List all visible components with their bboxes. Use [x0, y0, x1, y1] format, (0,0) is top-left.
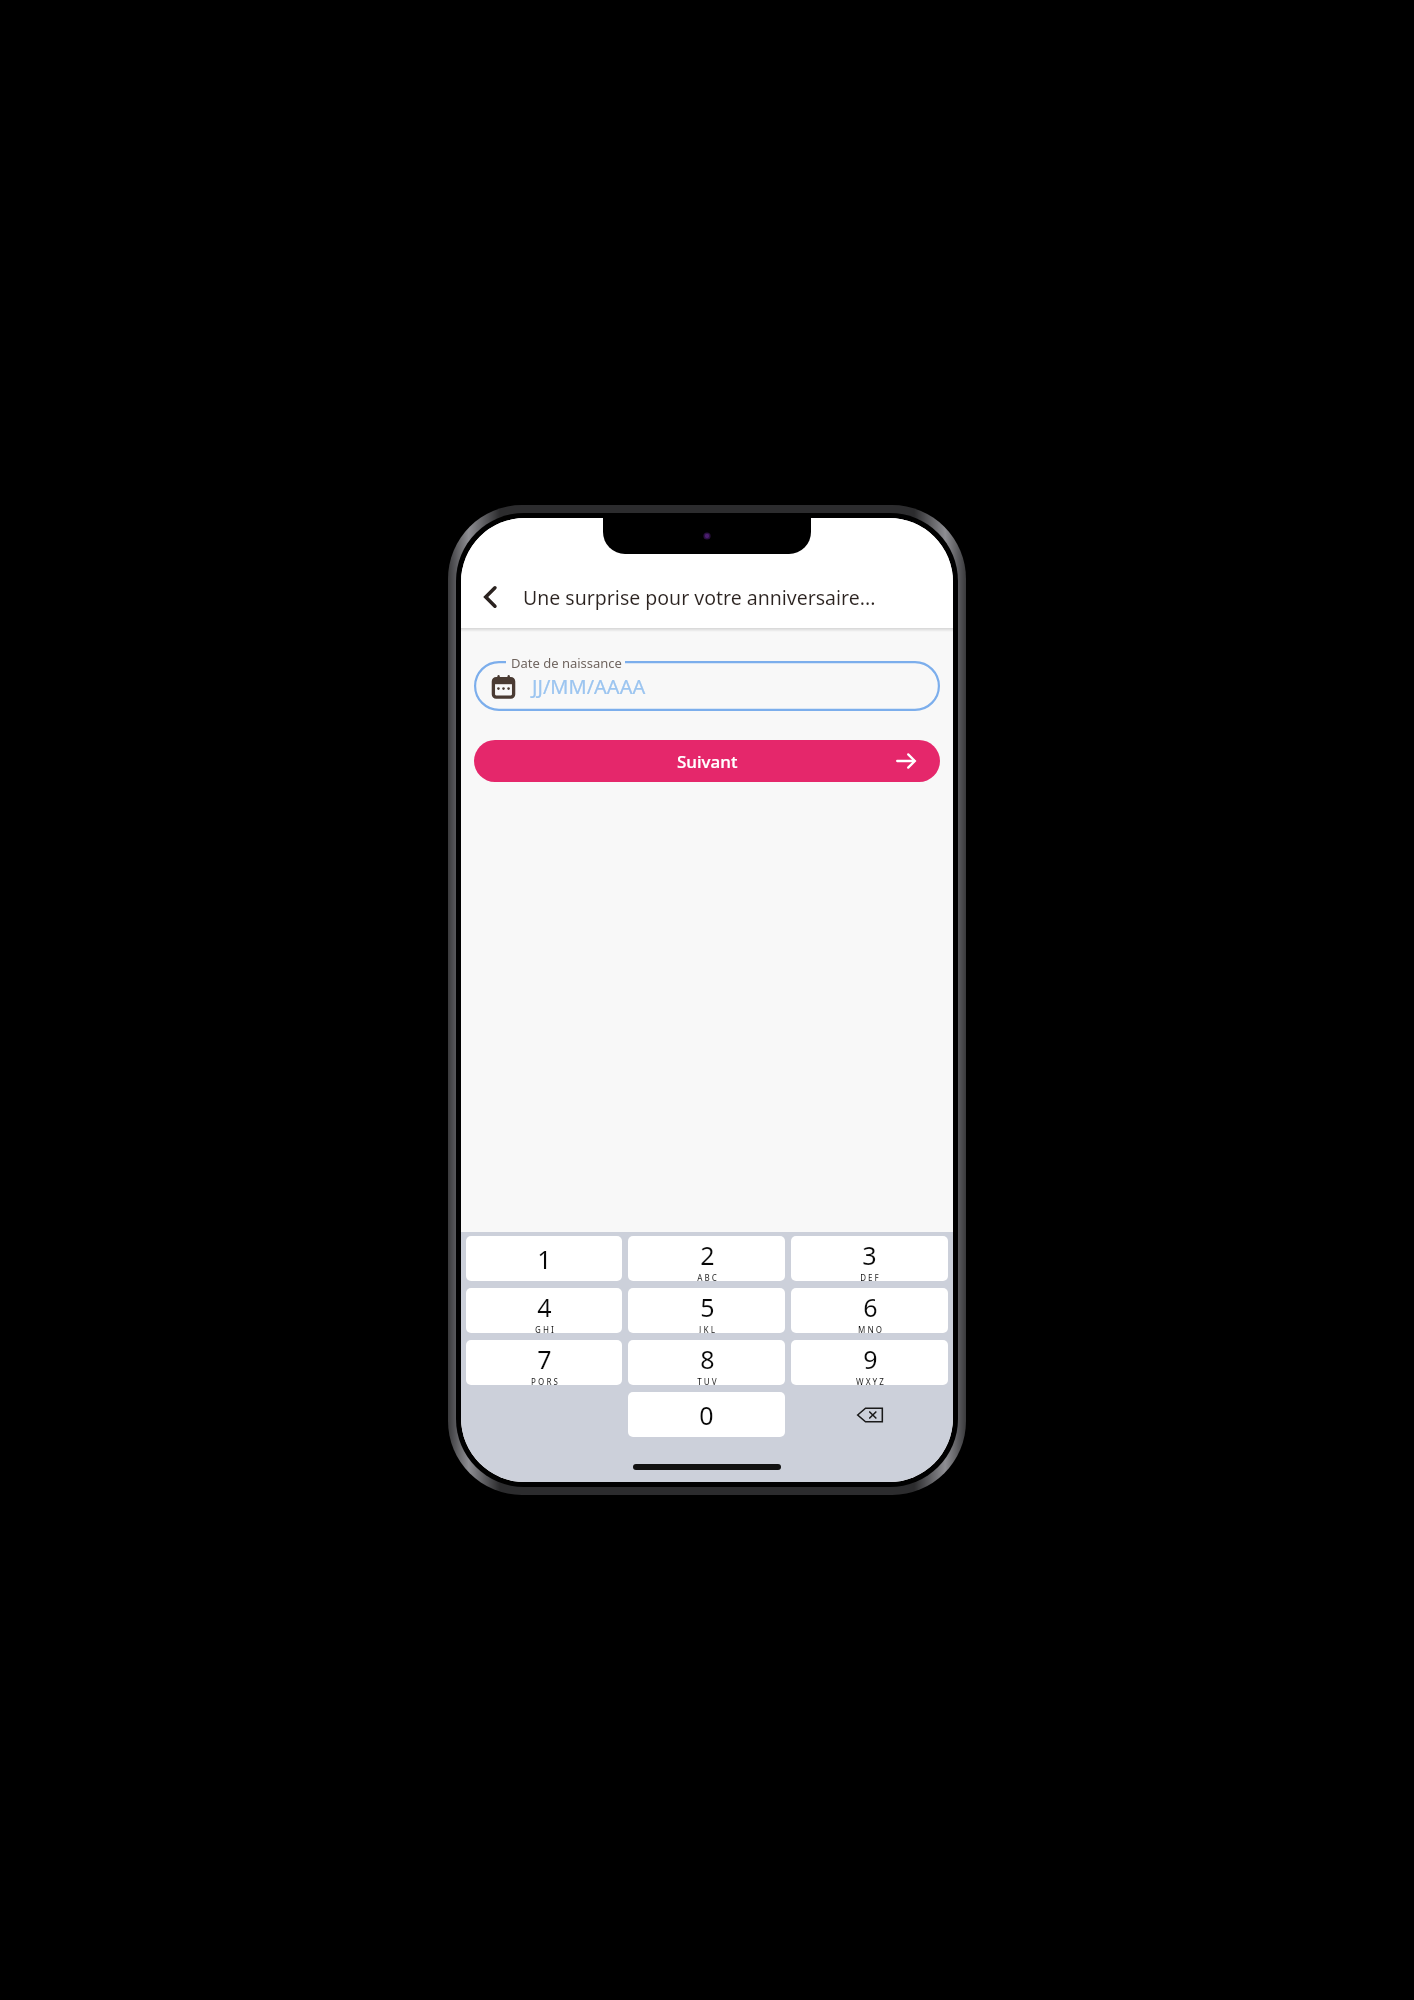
staticText: Une surprise pour votre anniversaire...	[523, 584, 876, 611]
staticText: W X Y Z	[856, 1376, 884, 1385]
staticText: P Q R S	[531, 1376, 558, 1385]
staticText: 0	[699, 1398, 714, 1432]
staticText: 2	[700, 1238, 715, 1272]
staticText: T U V	[697, 1376, 717, 1385]
button[interactable]: 4	[466, 1288, 622, 1333]
staticText: M N O	[858, 1324, 882, 1333]
staticText: 5	[700, 1290, 715, 1324]
button[interactable]: 0	[628, 1392, 785, 1437]
staticText: D E F	[860, 1272, 879, 1281]
button[interactable]: Suivant	[474, 740, 940, 782]
staticText: Suivant	[677, 750, 738, 773]
staticText: A B C	[697, 1272, 717, 1281]
button[interactable]: Date de naissance	[474, 654, 940, 711]
button[interactable]: 7	[466, 1340, 622, 1385]
button[interactable]: Effacer	[788, 1392, 951, 1437]
button[interactable]: Retour	[467, 573, 515, 621]
staticText: 6	[863, 1290, 878, 1324]
staticText: 9	[863, 1342, 878, 1376]
staticText: 4	[537, 1290, 552, 1324]
staticText: 1	[537, 1242, 552, 1276]
staticText: 3	[862, 1238, 877, 1272]
other: Suivant	[894, 749, 918, 773]
button[interactable]: 2	[628, 1236, 785, 1281]
button[interactable]: 3	[791, 1236, 948, 1281]
button[interactable]: 5	[628, 1288, 785, 1333]
staticText: J K L	[699, 1324, 715, 1333]
button[interactable]: 6	[791, 1288, 948, 1333]
staticText: 7	[537, 1342, 552, 1376]
button[interactable]: 1	[466, 1236, 622, 1281]
staticText: 8	[700, 1342, 715, 1376]
button[interactable]: 8	[628, 1340, 785, 1385]
button[interactable]: 9	[791, 1340, 948, 1385]
staticText: G H I	[535, 1324, 554, 1333]
staticText: Date de naissance	[511, 654, 622, 672]
staticText: JJ/MM/AAAA	[532, 673, 646, 700]
